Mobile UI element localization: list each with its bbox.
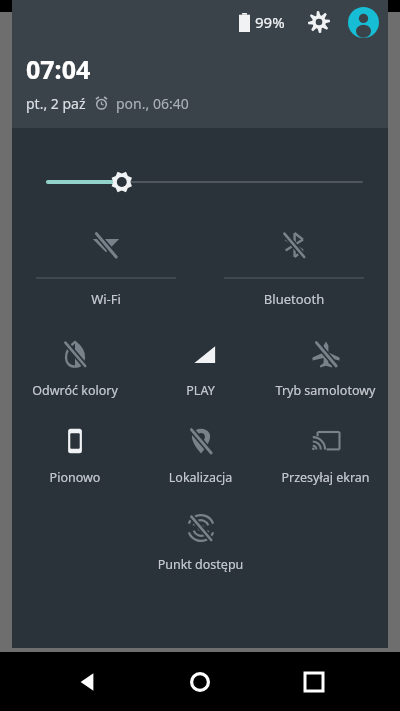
button[interactable]: Recents: [287, 655, 341, 709]
staticText: Wi-Fi: [12, 290, 200, 308]
button[interactable]: Bluetooth: [200, 224, 388, 308]
button[interactable]: Wi-Fi: [12, 224, 200, 308]
button[interactable]: Pionowo: [12, 421, 138, 486]
button[interactable]: Home: [173, 655, 227, 709]
staticText: 99%: [255, 12, 285, 32]
button[interactable]: Tryb samolotowy: [263, 334, 388, 399]
staticText: pt., 2 paź: [26, 94, 86, 113]
button[interactable]: Back: [60, 655, 114, 709]
staticText: Bluetooth: [200, 290, 388, 308]
staticText: pon., 06:40: [116, 94, 189, 113]
staticText: 07:04: [26, 52, 91, 86]
staticText: PLAY: [138, 382, 263, 399]
staticText: Punkt dostępu: [138, 556, 263, 573]
button[interactable]: Przesyłaj ekran: [263, 421, 388, 486]
staticText: Lokalizacja: [138, 469, 263, 486]
button[interactable]: Punkt dostępu: [138, 508, 263, 573]
button[interactable]: Odwróć kolory: [12, 334, 138, 399]
button[interactable]: Lokalizacja: [138, 421, 263, 486]
staticText: Tryb samolotowy: [263, 382, 388, 399]
button[interactable]: PLAY: [138, 334, 263, 399]
button[interactable]: Brightness: [12, 162, 388, 202]
staticText: Przesyłaj ekran: [263, 469, 388, 486]
staticText: Odwróć kolory: [12, 382, 138, 399]
button[interactable]: Settings: [302, 5, 336, 39]
staticText: Pionowo: [12, 469, 138, 486]
button[interactable]: User account: [346, 5, 380, 39]
